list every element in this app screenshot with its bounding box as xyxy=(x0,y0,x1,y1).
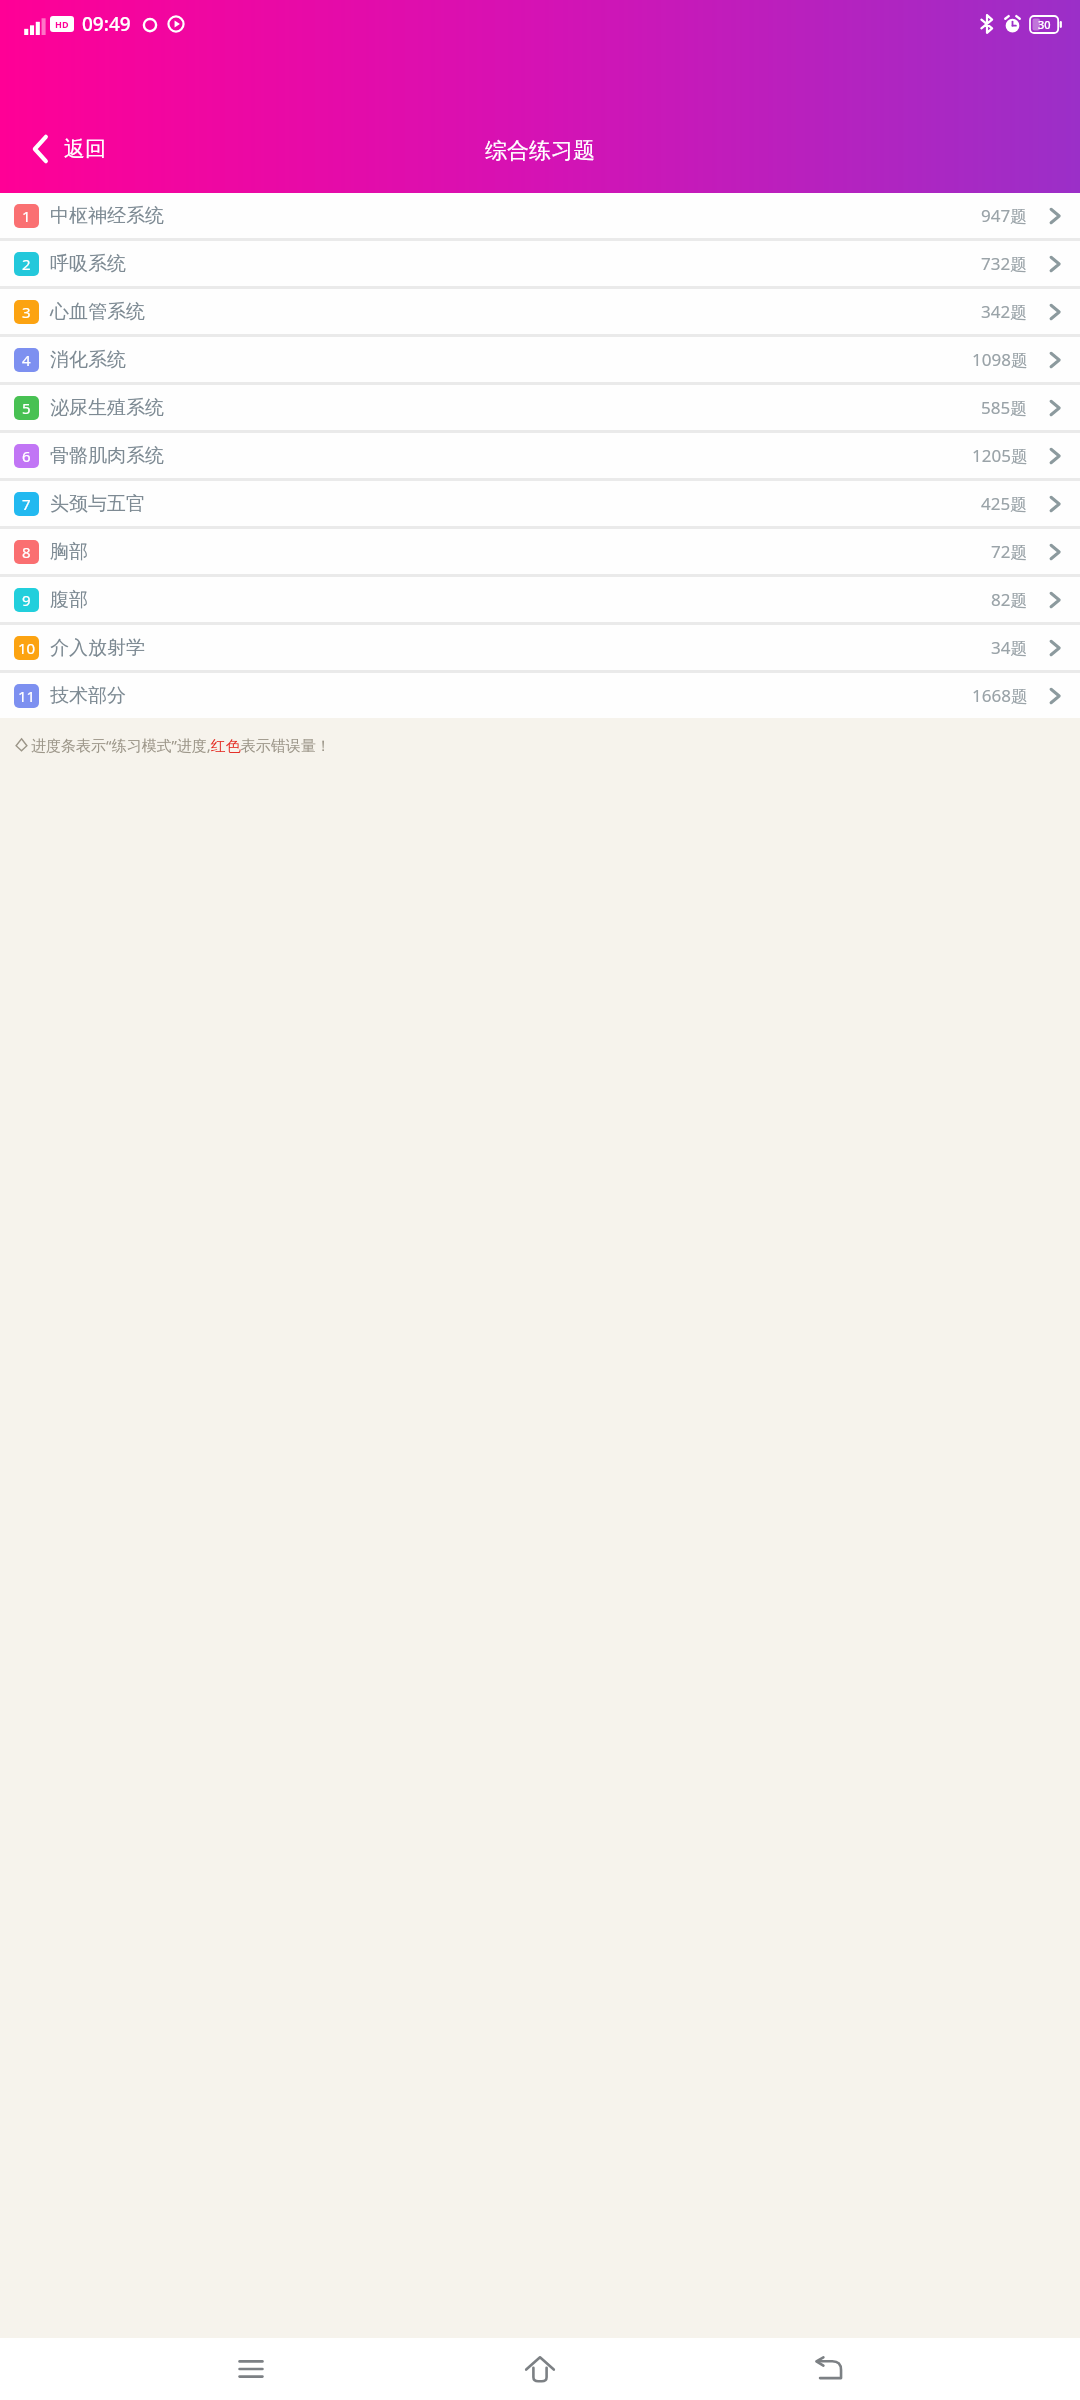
staticText: 4 xyxy=(22,350,31,370)
staticText: 综合练习题 xyxy=(485,137,595,165)
staticText: 腹部 xyxy=(50,588,88,612)
staticText: 09:49 xyxy=(82,11,131,37)
button[interactable]: 返回 xyxy=(20,127,116,171)
staticText: 11 xyxy=(18,686,36,706)
staticText: 1205题 xyxy=(972,444,1028,467)
staticText: 82题 xyxy=(991,588,1028,611)
staticText: 心血管系统 xyxy=(50,300,145,324)
staticText: 947题 xyxy=(981,204,1028,227)
button[interactable]: Recent apps xyxy=(213,2338,289,2400)
button[interactable]: Home xyxy=(502,2338,578,2400)
staticText: 中枢神经系统 xyxy=(50,204,164,228)
staticText: 9 xyxy=(22,590,31,610)
staticText: 5 xyxy=(22,398,31,418)
staticText: 消化系统 xyxy=(50,348,126,372)
staticText: 1098题 xyxy=(972,348,1028,371)
staticText: 泌尿生殖系统 xyxy=(50,396,164,420)
staticText: 10 xyxy=(18,638,36,658)
button[interactable]: 5 xyxy=(0,385,1080,430)
button[interactable]: 9 xyxy=(0,577,1080,622)
staticText: 342题 xyxy=(981,300,1028,323)
staticText: 返回 xyxy=(64,136,106,162)
button[interactable]: 1 xyxy=(0,193,1080,238)
staticText: 头颈与五官 xyxy=(50,492,145,516)
button[interactable]: 10 xyxy=(0,625,1080,670)
staticText: 6 xyxy=(22,446,31,466)
staticText: 技术部分 xyxy=(50,684,126,708)
staticText: 425题 xyxy=(981,492,1028,515)
button[interactable]: 7 xyxy=(0,481,1080,526)
staticText: 骨骼肌肉系统 xyxy=(50,444,164,468)
button[interactable]: 8 xyxy=(0,529,1080,574)
button[interactable]: 3 xyxy=(0,289,1080,334)
staticText: 1 xyxy=(22,206,31,226)
staticText: 胸部 xyxy=(50,540,88,564)
staticText: 进度条表示“练习模式”进度,红色表示错误量！ xyxy=(31,735,331,755)
staticText: 8 xyxy=(22,542,31,562)
staticText: 34题 xyxy=(991,636,1028,659)
staticText: 30 xyxy=(1038,17,1051,32)
staticText: 2 xyxy=(22,254,31,274)
staticText: 呼吸系统 xyxy=(50,252,126,276)
button[interactable]: Back xyxy=(791,2338,867,2400)
button[interactable]: 4 xyxy=(0,337,1080,382)
staticText: HD xyxy=(55,18,69,30)
staticText: 3 xyxy=(22,302,31,322)
staticText: 7 xyxy=(22,494,31,514)
button[interactable]: 11 xyxy=(0,673,1080,718)
button[interactable]: 6 xyxy=(0,433,1080,478)
staticText: 1668题 xyxy=(972,684,1028,707)
staticText: 585题 xyxy=(981,396,1028,419)
staticText: 732题 xyxy=(981,252,1028,275)
staticText: 介入放射学 xyxy=(50,636,145,660)
button[interactable]: 2 xyxy=(0,241,1080,286)
staticText: 72题 xyxy=(991,540,1028,563)
